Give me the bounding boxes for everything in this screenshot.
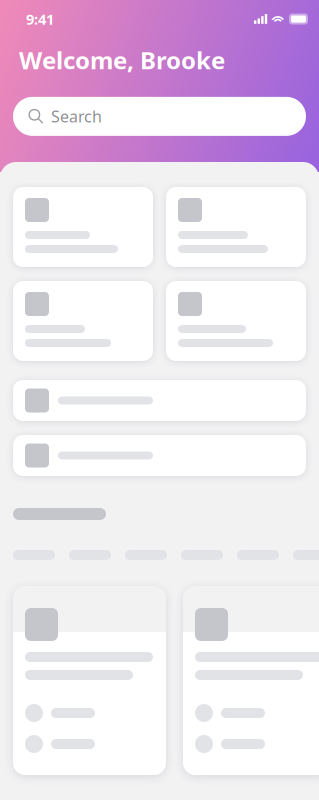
staticText: Welcome, Brooke xyxy=(19,44,225,76)
button[interactable]: Feature card xyxy=(183,586,319,775)
button[interactable]: Feature card xyxy=(13,586,166,775)
button[interactable]: Row xyxy=(13,380,306,421)
button[interactable]: Item xyxy=(13,187,153,267)
staticText: 9:41 xyxy=(26,9,54,29)
button[interactable]: Row xyxy=(13,435,306,476)
button[interactable]: Item xyxy=(166,281,306,361)
staticText: Search xyxy=(51,106,102,127)
button[interactable]: Item xyxy=(13,281,153,361)
button[interactable]: Item xyxy=(166,187,306,267)
